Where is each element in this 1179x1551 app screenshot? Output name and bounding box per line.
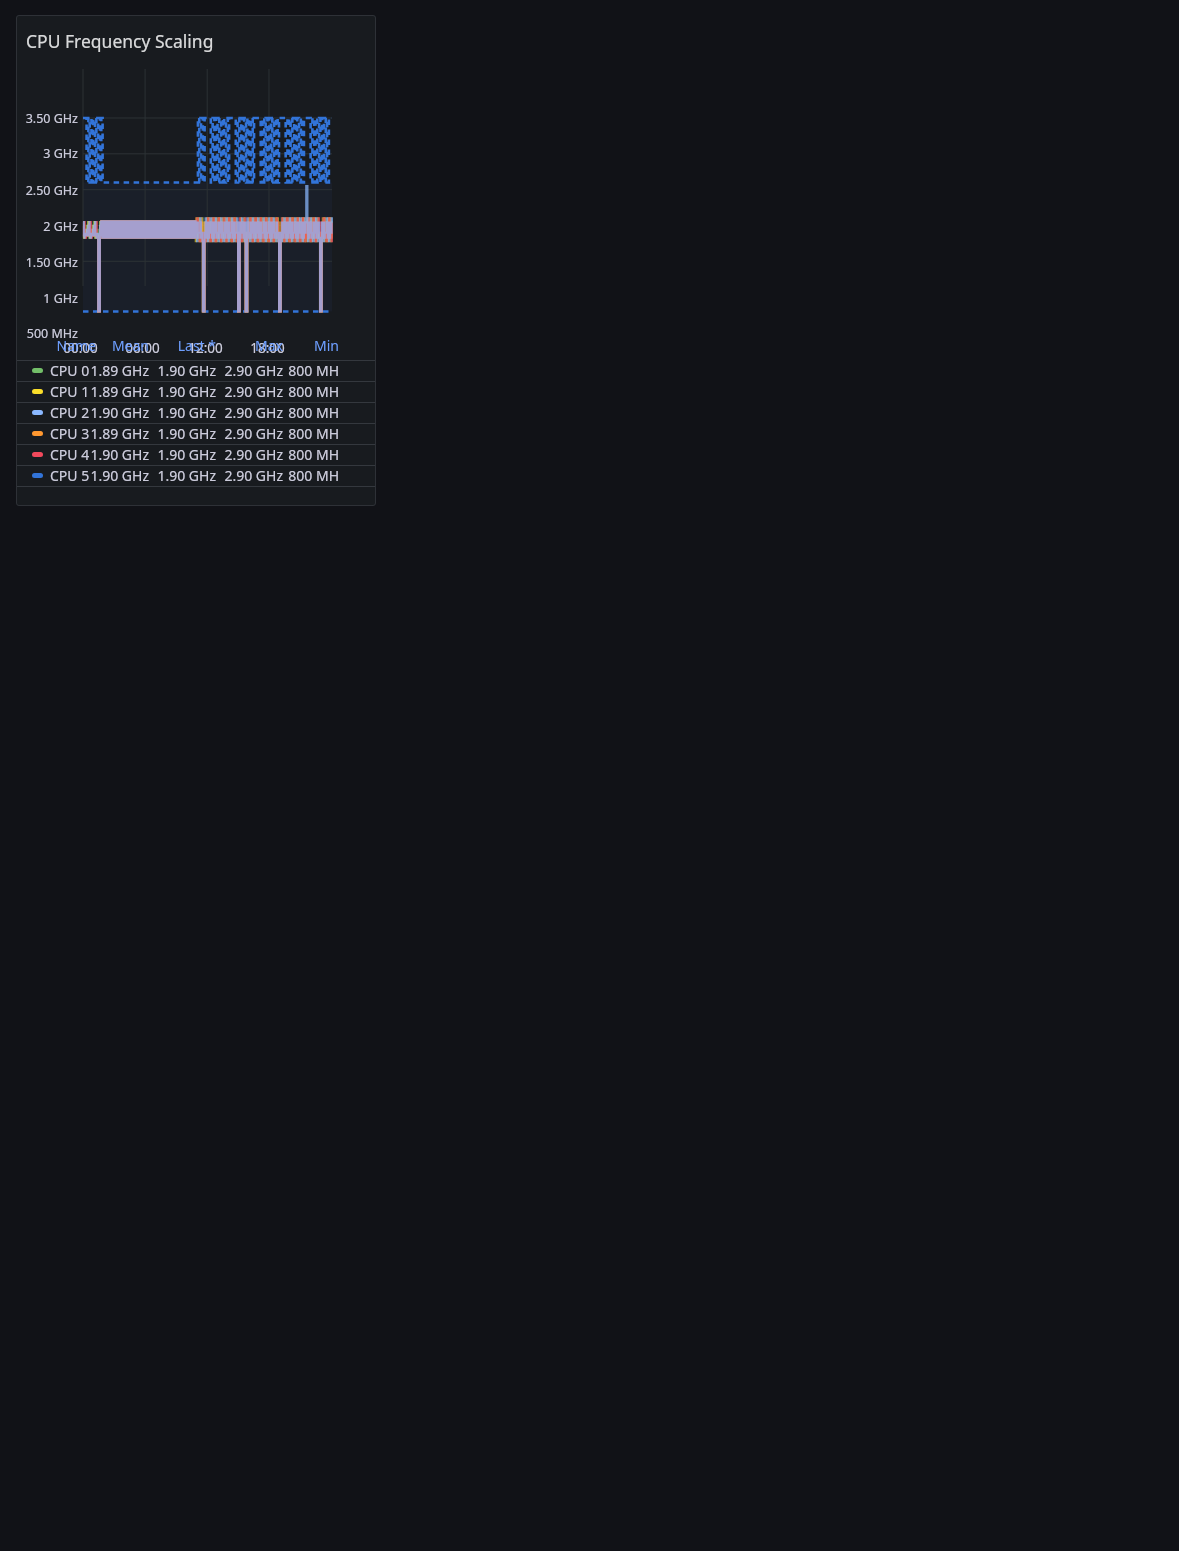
staticText: 500 MHz: [26, 325, 78, 342]
staticText: 1.90 GHz: [157, 424, 216, 443]
staticText: 1.90 GHz: [157, 403, 216, 422]
staticText: 3 GHz: [43, 145, 78, 162]
staticText: 800 MH: [288, 424, 339, 443]
staticText: 800 MH: [288, 403, 339, 422]
staticText: CPU 2: [50, 403, 90, 422]
staticText: Max: [255, 336, 283, 355]
staticText: Mean: [111, 336, 149, 355]
staticText: 1.89 GHz: [90, 382, 149, 401]
button[interactable]: CPU 0: [16, 360, 376, 381]
staticText: 18:00: [250, 339, 285, 357]
staticText: 1.90 GHz: [157, 466, 216, 485]
staticText: 1.90 GHz: [90, 466, 149, 485]
button[interactable]: CPU 1: [16, 381, 376, 402]
staticText: 06:00: [125, 339, 160, 357]
staticText: 3.50 GHz: [25, 110, 78, 127]
staticText: 800 MH: [288, 466, 339, 485]
staticText: 1.90 GHz: [90, 445, 149, 464]
staticText: 1 GHz: [43, 290, 78, 307]
staticText: 2 GHz: [43, 218, 78, 235]
button[interactable]: Max: [221, 330, 283, 360]
button[interactable]: Min: [277, 330, 339, 360]
button[interactable]: CPU Frequency Scaling: [16, 15, 376, 506]
staticText: 800 MH: [288, 361, 339, 380]
staticText: CPU 1: [50, 382, 90, 401]
staticText: CPU 3: [50, 424, 90, 443]
staticText: 1.90 GHz: [90, 403, 149, 422]
staticText: Last *: [177, 336, 216, 355]
button[interactable]: CPU 4: [16, 444, 376, 465]
staticText: 00:00: [63, 339, 98, 357]
staticText: Min: [314, 336, 339, 355]
staticText: 1.90 GHz: [157, 445, 216, 464]
staticText: Name: [56, 336, 96, 355]
button[interactable]: CPU 5: [16, 465, 376, 486]
staticText: 2.90 GHz: [224, 382, 283, 401]
staticText: 1.89 GHz: [90, 361, 149, 380]
staticText: 2.90 GHz: [224, 466, 283, 485]
staticText: CPU Frequency Scaling: [26, 29, 214, 53]
staticText: 2.90 GHz: [224, 403, 283, 422]
staticText: 2.90 GHz: [224, 361, 283, 380]
staticText: 800 MH: [288, 382, 339, 401]
button[interactable]: CPU 3: [16, 423, 376, 444]
staticText: CPU 0: [50, 361, 90, 380]
staticText: 2.90 GHz: [224, 445, 283, 464]
button[interactable]: Name: [36, 330, 96, 360]
button[interactable]: Last *: [154, 330, 216, 360]
staticText: CPU 5: [50, 466, 90, 485]
staticText: 1.90 GHz: [157, 361, 216, 380]
staticText: 2.50 GHz: [25, 182, 78, 199]
staticText: 1.89 GHz: [90, 424, 149, 443]
button[interactable]: Mean: [87, 330, 149, 360]
staticText: 12:00: [188, 339, 223, 357]
staticText: CPU 4: [50, 445, 90, 464]
button[interactable]: CPU 2: [16, 402, 376, 423]
staticText: 800 MH: [288, 445, 339, 464]
staticText: 2.90 GHz: [224, 424, 283, 443]
staticText: 1.90 GHz: [157, 382, 216, 401]
staticText: 1.50 GHz: [25, 254, 78, 271]
button[interactable]: CPU Frequency Scaling: [16, 15, 376, 67]
